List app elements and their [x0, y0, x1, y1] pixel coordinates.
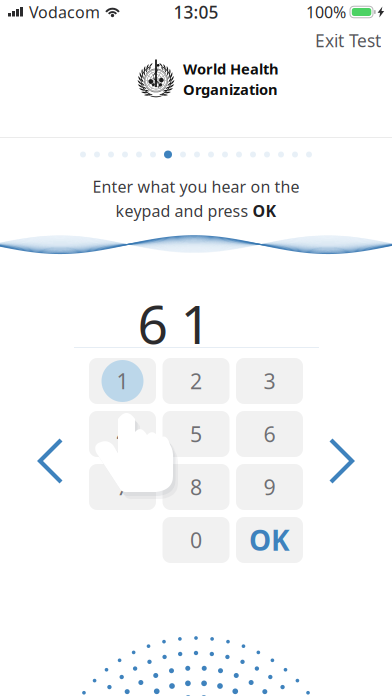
- button[interactable]: 2: [162, 358, 229, 404]
- staticText: OK: [249, 521, 290, 559]
- button[interactable]: 6: [236, 411, 303, 457]
- button[interactable]: 0: [162, 517, 229, 563]
- staticText: 5: [190, 420, 202, 448]
- staticText: 100%: [306, 1, 346, 23]
- staticText: 13:05: [173, 0, 218, 23]
- staticText: 7: [116, 473, 128, 501]
- staticText: 0: [190, 526, 202, 554]
- staticText: 3: [263, 367, 275, 395]
- staticText: OK: [252, 200, 276, 221]
- staticText: 1: [116, 367, 128, 395]
- button[interactable]: 1: [89, 358, 156, 404]
- button[interactable]: 8: [162, 464, 229, 510]
- staticText: 6: [137, 288, 168, 359]
- button[interactable]: Previous: [26, 426, 75, 496]
- button[interactable]: Exit Test: [305, 21, 391, 60]
- staticText: 8: [190, 473, 202, 501]
- staticText: 4: [116, 420, 128, 448]
- staticText: World Health: [183, 59, 279, 78]
- staticText: Organization: [183, 79, 278, 99]
- button[interactable]: 4: [89, 411, 156, 457]
- staticText: keypad and press: [115, 200, 252, 221]
- button[interactable]: OK: [236, 517, 303, 563]
- staticText: 9: [263, 473, 275, 501]
- staticText: [232, 288, 246, 359]
- button[interactable]: 5: [162, 411, 229, 457]
- staticText: Exit Test: [315, 29, 381, 52]
- button[interactable]: 9: [236, 464, 303, 510]
- staticText: Enter what you hear on the: [92, 176, 299, 197]
- staticText: Vodacom: [29, 1, 100, 23]
- staticText: 6: [263, 420, 275, 448]
- staticText: 2: [190, 367, 202, 395]
- button[interactable]: 3: [236, 358, 303, 404]
- button[interactable]: 7: [89, 464, 156, 510]
- button[interactable]: Next: [317, 426, 366, 496]
- staticText: 1: [180, 288, 211, 359]
